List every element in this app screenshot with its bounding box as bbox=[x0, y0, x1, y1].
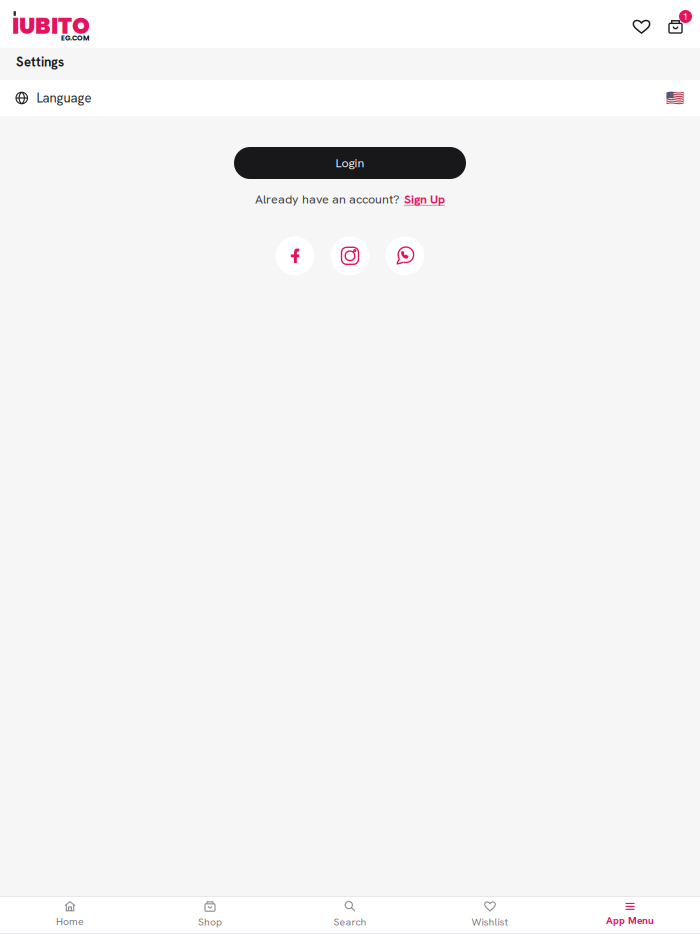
staticText: 🇺🇸 bbox=[666, 89, 684, 107]
button[interactable]: WhatsApp bbox=[385, 236, 424, 275]
staticText: Shop bbox=[198, 915, 222, 929]
staticText: IUBITO bbox=[12, 10, 90, 42]
staticText: Language bbox=[36, 89, 91, 106]
staticText: Search bbox=[333, 915, 366, 929]
button[interactable]: Wishlist bbox=[619, 0, 665, 48]
staticText: Login bbox=[335, 155, 364, 171]
button[interactable]: Language bbox=[0, 80, 700, 116]
staticText: EG.COM bbox=[61, 33, 89, 43]
staticText: Home bbox=[56, 915, 84, 928]
button[interactable]: Cart bbox=[665, 0, 696, 48]
staticText: Settings bbox=[16, 53, 64, 70]
button[interactable]: Wishlist bbox=[420, 895, 560, 934]
staticText: Already have an account? bbox=[255, 191, 399, 207]
button[interactable]: Facebook bbox=[275, 236, 314, 275]
button[interactable]: Home bbox=[0, 896, 140, 934]
staticText: Sign Up bbox=[404, 191, 445, 207]
staticText: Wishlist bbox=[471, 915, 508, 929]
staticText: 1 bbox=[682, 10, 688, 23]
button[interactable]: Instagram bbox=[330, 236, 369, 275]
button[interactable]: Search bbox=[280, 895, 420, 934]
staticText: App Menu bbox=[606, 914, 654, 927]
button[interactable]: App Menu bbox=[560, 897, 700, 933]
button[interactable]: Login bbox=[234, 147, 466, 179]
button[interactable]: Sign Up bbox=[404, 191, 445, 207]
button[interactable]: Shop bbox=[140, 895, 280, 934]
